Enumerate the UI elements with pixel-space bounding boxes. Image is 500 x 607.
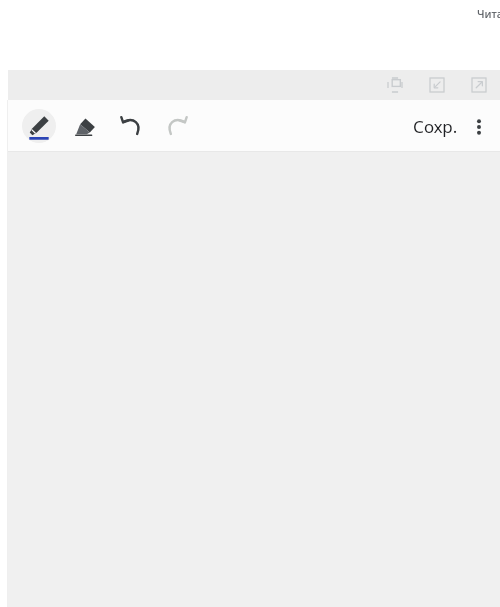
button[interactable]: Expand — [468, 74, 490, 96]
button[interactable]: Redo — [160, 109, 194, 143]
button[interactable]: Pop out — [384, 74, 406, 96]
button[interactable]: Pen — [22, 109, 56, 143]
button[interactable]: Undo — [114, 109, 148, 143]
button[interactable]: Eraser — [68, 109, 102, 143]
button[interactable]: Сохр. — [407, 111, 464, 142]
staticText: Сохр. — [413, 115, 458, 138]
button[interactable]: Shrink — [426, 74, 448, 96]
button[interactable]: More options — [464, 112, 494, 142]
staticText: Чита — [477, 6, 500, 21]
